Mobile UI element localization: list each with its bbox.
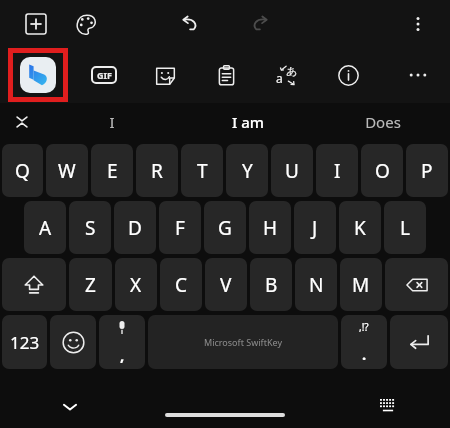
staticText: Does bbox=[365, 112, 401, 132]
staticText: E bbox=[107, 158, 118, 184]
button[interactable]: D bbox=[114, 201, 156, 254]
button[interactable]: Q bbox=[2, 144, 43, 197]
button[interactable]: More options bbox=[400, 6, 436, 42]
staticText: a bbox=[276, 70, 283, 86]
staticText: V bbox=[220, 272, 232, 298]
button[interactable]: Bing bbox=[20, 57, 56, 93]
button[interactable]: Enter bbox=[390, 315, 448, 369]
button[interactable]: W bbox=[46, 144, 88, 197]
staticText: L bbox=[400, 215, 410, 241]
staticText: S bbox=[85, 215, 96, 241]
button[interactable]: J bbox=[294, 201, 336, 254]
staticText: Y bbox=[242, 158, 253, 184]
staticText: 123 bbox=[10, 331, 40, 354]
button[interactable]: Info bbox=[328, 55, 368, 95]
staticText: M bbox=[352, 272, 370, 298]
button[interactable]: K bbox=[339, 201, 381, 254]
staticText: P bbox=[421, 158, 433, 184]
button[interactable]: F bbox=[159, 201, 201, 254]
staticText: J bbox=[312, 215, 318, 241]
button[interactable]: Undo bbox=[169, 4, 209, 44]
staticText: T bbox=[197, 158, 208, 184]
button[interactable]: O bbox=[361, 144, 403, 197]
staticText: O bbox=[375, 158, 390, 184]
button[interactable]: GIF bbox=[84, 55, 124, 95]
staticText: U bbox=[285, 158, 299, 184]
button[interactable]: 123 bbox=[2, 315, 47, 369]
button[interactable]: Y bbox=[226, 144, 268, 197]
button[interactable]: A bbox=[24, 201, 66, 254]
button[interactable]: Redo bbox=[241, 4, 281, 44]
button[interactable]: I bbox=[44, 103, 180, 141]
button[interactable]: M bbox=[340, 258, 382, 311]
staticText: B bbox=[265, 272, 278, 298]
staticText: C bbox=[175, 272, 188, 298]
staticText: G bbox=[218, 215, 232, 241]
button[interactable]: T bbox=[181, 144, 223, 197]
staticText: I bbox=[109, 112, 115, 132]
staticText: F bbox=[175, 215, 185, 241]
button[interactable]: Backspace bbox=[385, 258, 448, 311]
button[interactable]: V bbox=[205, 258, 247, 311]
button[interactable]: B bbox=[250, 258, 292, 311]
button[interactable]: C bbox=[160, 258, 202, 311]
button[interactable]: Add bbox=[16, 4, 56, 44]
button[interactable]: Shift bbox=[2, 258, 66, 311]
button[interactable]: G bbox=[204, 201, 246, 254]
button[interactable]: Z bbox=[69, 258, 112, 311]
button[interactable]: Punctuation and period bbox=[341, 315, 387, 369]
staticText: . bbox=[362, 344, 367, 364]
staticText: あ bbox=[286, 64, 298, 78]
button[interactable]: Voice input and comma bbox=[99, 315, 145, 369]
staticText: A bbox=[39, 215, 52, 241]
button[interactable]: H bbox=[249, 201, 291, 254]
button[interactable]: Microsoft SwiftKey bbox=[148, 315, 338, 369]
button[interactable]: Clipboard bbox=[206, 55, 246, 95]
button[interactable]: Does bbox=[315, 103, 450, 141]
staticText: R bbox=[151, 158, 163, 184]
button[interactable]: Translator bbox=[267, 55, 307, 95]
staticText: X bbox=[130, 272, 142, 298]
staticText: GIF bbox=[97, 69, 112, 81]
staticText: K bbox=[354, 215, 366, 241]
button[interactable]: Themes bbox=[66, 4, 106, 44]
staticText: ,!? bbox=[359, 320, 369, 334]
button[interactable]: I am bbox=[180, 103, 315, 141]
staticText: W bbox=[58, 158, 76, 184]
button[interactable]: X bbox=[115, 258, 157, 311]
button[interactable]: Switch keyboard bbox=[370, 389, 406, 425]
button[interactable]: I bbox=[316, 144, 358, 197]
staticText: Z bbox=[85, 272, 96, 298]
staticText: D bbox=[128, 215, 142, 241]
button[interactable]: More bbox=[398, 55, 438, 95]
button[interactable]: U bbox=[271, 144, 313, 197]
button[interactable]: L bbox=[384, 201, 426, 254]
button[interactable]: Emoji bbox=[50, 315, 96, 369]
button[interactable]: R bbox=[136, 144, 178, 197]
staticText: Microsoft SwiftKey bbox=[204, 336, 282, 348]
button[interactable]: P bbox=[406, 144, 448, 197]
staticText: I bbox=[334, 158, 341, 184]
staticText: H bbox=[263, 215, 278, 241]
staticText: Q bbox=[15, 158, 30, 184]
staticText: N bbox=[309, 272, 324, 298]
staticText: I am bbox=[232, 112, 264, 132]
button[interactable]: S bbox=[69, 201, 111, 254]
button[interactable]: Collapse suggestions bbox=[6, 106, 38, 138]
button[interactable]: Stickers bbox=[145, 55, 185, 95]
staticText: , bbox=[120, 345, 125, 365]
button[interactable]: Hide keyboard bbox=[52, 389, 88, 425]
button[interactable]: E bbox=[91, 144, 133, 197]
button[interactable]: N bbox=[295, 258, 337, 311]
